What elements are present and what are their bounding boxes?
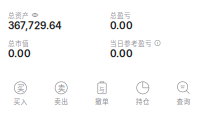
staticText: 总资产 (8, 10, 29, 20)
staticText: 持仓 (136, 96, 150, 106)
staticText: 0.00 (8, 47, 31, 60)
staticText: 0.00 (110, 19, 133, 32)
staticText: 买 (17, 82, 24, 93)
staticText: 卖出 (54, 96, 68, 106)
staticText: 撤单 (95, 96, 109, 106)
staticText: 与 (99, 85, 105, 93)
staticText: 查询 (177, 96, 191, 106)
staticText: 0.00 (110, 47, 133, 60)
staticText: 总市值 (8, 38, 29, 48)
button[interactable]: 与 (82, 79, 122, 108)
staticText: 卖 (58, 82, 65, 93)
staticText: 买入 (13, 96, 27, 106)
staticText: 367,729.64 (8, 19, 62, 32)
staticText: 总盈亏 (110, 10, 131, 20)
staticText: 当日参考盈亏 (110, 38, 152, 48)
button[interactable]: 卖 (41, 79, 82, 108)
button[interactable]: 查询 (163, 79, 204, 108)
button[interactable]: 买 (0, 79, 41, 108)
button[interactable]: 持仓 (122, 79, 163, 108)
